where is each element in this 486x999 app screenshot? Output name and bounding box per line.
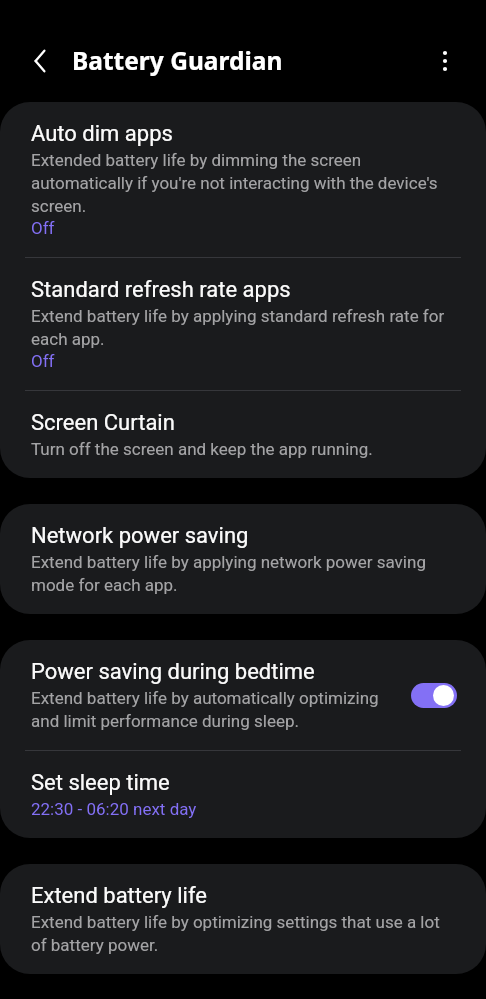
staticText: Extend battery life by optimizing settin… [31, 912, 455, 955]
button[interactable]: Auto dim apps [0, 102, 486, 257]
button[interactable]: Standard refresh rate apps [0, 258, 486, 390]
button[interactable]: Extend battery life [0, 864, 486, 974]
staticText: Turn off the screen and keep the app run… [31, 439, 373, 459]
staticText: Standard refresh rate apps [31, 277, 291, 303]
staticText: Network power saving [31, 523, 249, 549]
button[interactable]: Network power saving [0, 504, 486, 614]
staticText: Set sleep time [31, 770, 170, 796]
button[interactable]: Screen Curtain [0, 391, 486, 478]
staticText: Auto dim apps [31, 121, 173, 147]
staticText: Extend battery life by applying network … [31, 552, 455, 595]
staticText: Extend battery life by automatically opt… [31, 688, 401, 731]
button[interactable]: Power saving during bedtime [0, 640, 486, 750]
button[interactable]: Power saving during bedtime [411, 683, 457, 708]
button[interactable]: Set sleep time [0, 751, 486, 838]
staticText: Off [31, 351, 55, 371]
staticText: Battery Guardian [72, 44, 283, 77]
button[interactable]: Navigate up [17, 38, 62, 83]
staticText: Off [31, 218, 55, 238]
staticText: 22:30 - 06:20 next day [31, 799, 197, 819]
staticText: Power saving during bedtime [31, 659, 315, 685]
button[interactable]: More options [422, 38, 467, 83]
staticText: Screen Curtain [31, 410, 175, 436]
staticText: Extend battery life [31, 883, 207, 909]
staticText: Extended battery life by dimming the scr… [31, 150, 455, 216]
staticText: Extend battery life by applying standard… [31, 306, 455, 349]
